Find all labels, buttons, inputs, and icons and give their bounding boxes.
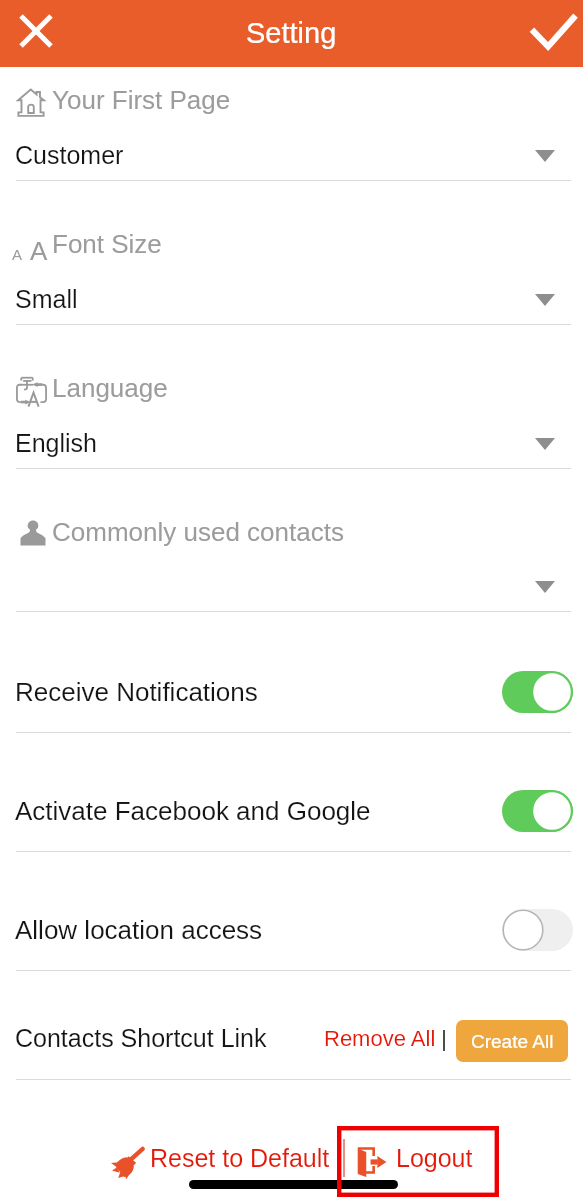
button[interactable]: Confirm (511, 0, 583, 67)
staticText: Contacts Shortcut Link (15, 1024, 267, 1052)
staticText: Create All (471, 1031, 554, 1052)
staticText: English (15, 429, 97, 457)
staticText: Allow location access (15, 915, 263, 944)
button[interactable]: Logout (352, 1140, 476, 1188)
button[interactable]: Your First Page (0, 67, 583, 181)
staticText: Commonly used contacts (52, 517, 344, 546)
button[interactable]: Receive Notifications (0, 611, 583, 733)
button[interactable]: A (0, 180, 583, 325)
staticText: Reset to Default (150, 1144, 330, 1172)
staticText: Your First Page (52, 85, 231, 114)
staticText: Activate Facebook and Google (15, 796, 371, 825)
button[interactable]: Language (0, 324, 583, 469)
staticText: Receive Notifications (15, 677, 258, 706)
staticText: Setting (246, 17, 337, 49)
staticText: A (30, 236, 48, 265)
button[interactable]: Remove All (316, 1018, 444, 1059)
button[interactable]: Commonly used contacts (0, 468, 583, 612)
button[interactable]: Create All (456, 1020, 568, 1062)
staticText: Remove All (324, 1026, 436, 1051)
staticText: Language (52, 373, 168, 402)
button[interactable]: Close (0, 0, 72, 67)
button[interactable]: Reset to Default (103, 1140, 335, 1188)
staticText: Logout (396, 1144, 473, 1172)
button[interactable]: Allow location access (0, 851, 583, 971)
button[interactable]: Activate Facebook and Google (0, 732, 583, 852)
staticText: Customer (15, 141, 124, 169)
staticText: Font Size (52, 229, 162, 258)
staticText: Small (15, 285, 78, 313)
staticText: A (12, 246, 23, 263)
